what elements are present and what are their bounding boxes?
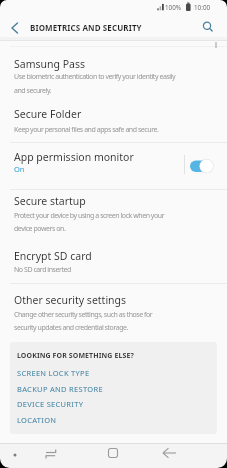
- staticText: Keep your personal files and apps safe a…: [14, 125, 159, 135]
- staticText: No SD card inserted: [14, 265, 71, 275]
- staticText: DEVICE SECURITY: [17, 399, 84, 409]
- button[interactable]: [194, 14, 222, 41]
- button[interactable]: App permission monitor: [0, 143, 184, 189]
- button[interactable]: LOCATION: [10, 413, 217, 429]
- staticText: LOOKING FOR SOMETHING ELSE?: [17, 351, 134, 361]
- staticText: Protect your device by using a screen lo…: [14, 211, 165, 221]
- staticText: Change other security settings, such as …: [14, 310, 153, 320]
- staticText: Use biometric authentication to verify y…: [14, 72, 176, 82]
- staticText: BIOMETRICS AND SECURITY: [30, 22, 142, 33]
- staticText: LOCATION: [17, 415, 57, 425]
- staticText: Encrypt SD card: [14, 249, 92, 263]
- button[interactable]: Secure Folder: [0, 100, 227, 142]
- button[interactable]: [95, 443, 131, 468]
- staticText: BACKUP AND RESTORE: [17, 384, 103, 394]
- button[interactable]: [0, 14, 30, 41]
- staticText: SCREEN LOCK TYPE: [17, 368, 90, 378]
- staticText: security updates and credential storage.: [14, 323, 128, 333]
- button[interactable]: Secure startup: [0, 190, 227, 242]
- staticText: 100%: [165, 3, 182, 12]
- staticText: and securely.: [14, 86, 52, 96]
- button[interactable]: DEVICE SECURITY: [10, 397, 217, 413]
- button[interactable]: Samsung Pass: [0, 47, 227, 100]
- staticText: Other security settings: [14, 293, 127, 307]
- staticText: device powers on.: [14, 224, 66, 234]
- button[interactable]: SCREEN LOCK TYPE: [10, 366, 217, 382]
- button[interactable]: Other security settings: [0, 284, 227, 340]
- button[interactable]: [152, 443, 188, 468]
- staticText: On: [14, 164, 25, 174]
- button[interactable]: [186, 152, 218, 180]
- button[interactable]: Encrypt SD card: [0, 242, 227, 283]
- button[interactable]: BACKUP AND RESTORE: [10, 382, 217, 397]
- staticText: 10:00: [194, 3, 211, 12]
- button[interactable]: [40, 443, 76, 468]
- staticText: Samsung Pass: [14, 57, 85, 71]
- staticText: Secure Folder: [14, 107, 82, 121]
- staticText: Secure startup: [14, 194, 86, 208]
- staticText: App permission monitor: [14, 150, 134, 164]
